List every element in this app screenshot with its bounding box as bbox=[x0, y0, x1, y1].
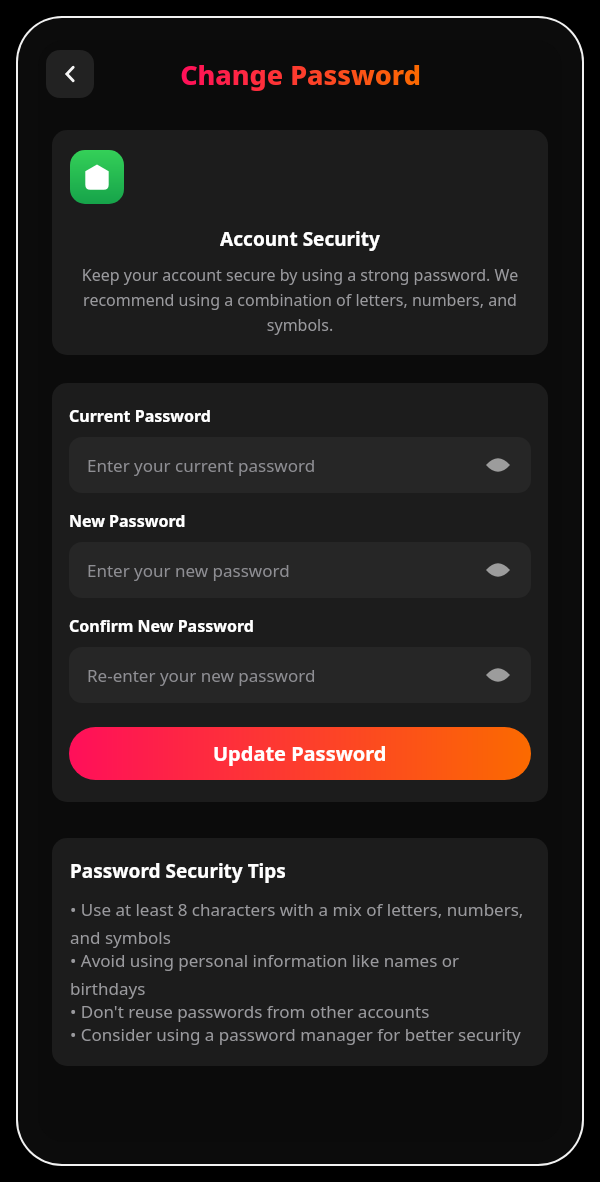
staticText: New Password bbox=[69, 510, 186, 532]
staticText: Current Password bbox=[69, 405, 211, 427]
button[interactable]: Update Password bbox=[69, 727, 531, 780]
staticText: Update Password bbox=[213, 740, 387, 767]
button[interactable]: Re-enter your new password bbox=[69, 647, 531, 703]
button[interactable]: Show password bbox=[483, 660, 513, 690]
button[interactable]: Enter your current password bbox=[69, 437, 531, 493]
button[interactable]: Back bbox=[46, 50, 94, 98]
staticText: • Don't reuse passwords from other accou… bbox=[70, 1000, 430, 1023]
staticText: • Avoid using personal information like … bbox=[70, 949, 530, 1000]
staticText: Keep your account secure by using a stro… bbox=[70, 264, 530, 335]
staticText: Enter your new password bbox=[87, 559, 483, 582]
button[interactable]: Show password bbox=[483, 450, 513, 480]
staticText: • Use at least 8 characters with a mix o… bbox=[70, 898, 530, 949]
staticText: Confirm New Password bbox=[69, 615, 254, 637]
staticText: Account Security bbox=[70, 226, 530, 252]
staticText: Enter your current password bbox=[87, 454, 483, 477]
button[interactable]: Show password bbox=[483, 555, 513, 585]
staticText: Change Password bbox=[180, 56, 421, 93]
staticText: Re-enter your new password bbox=[87, 664, 483, 687]
button[interactable]: Enter your new password bbox=[69, 542, 531, 598]
staticText: • Consider using a password manager for … bbox=[70, 1023, 521, 1046]
staticText: Password Security Tips bbox=[70, 858, 286, 884]
